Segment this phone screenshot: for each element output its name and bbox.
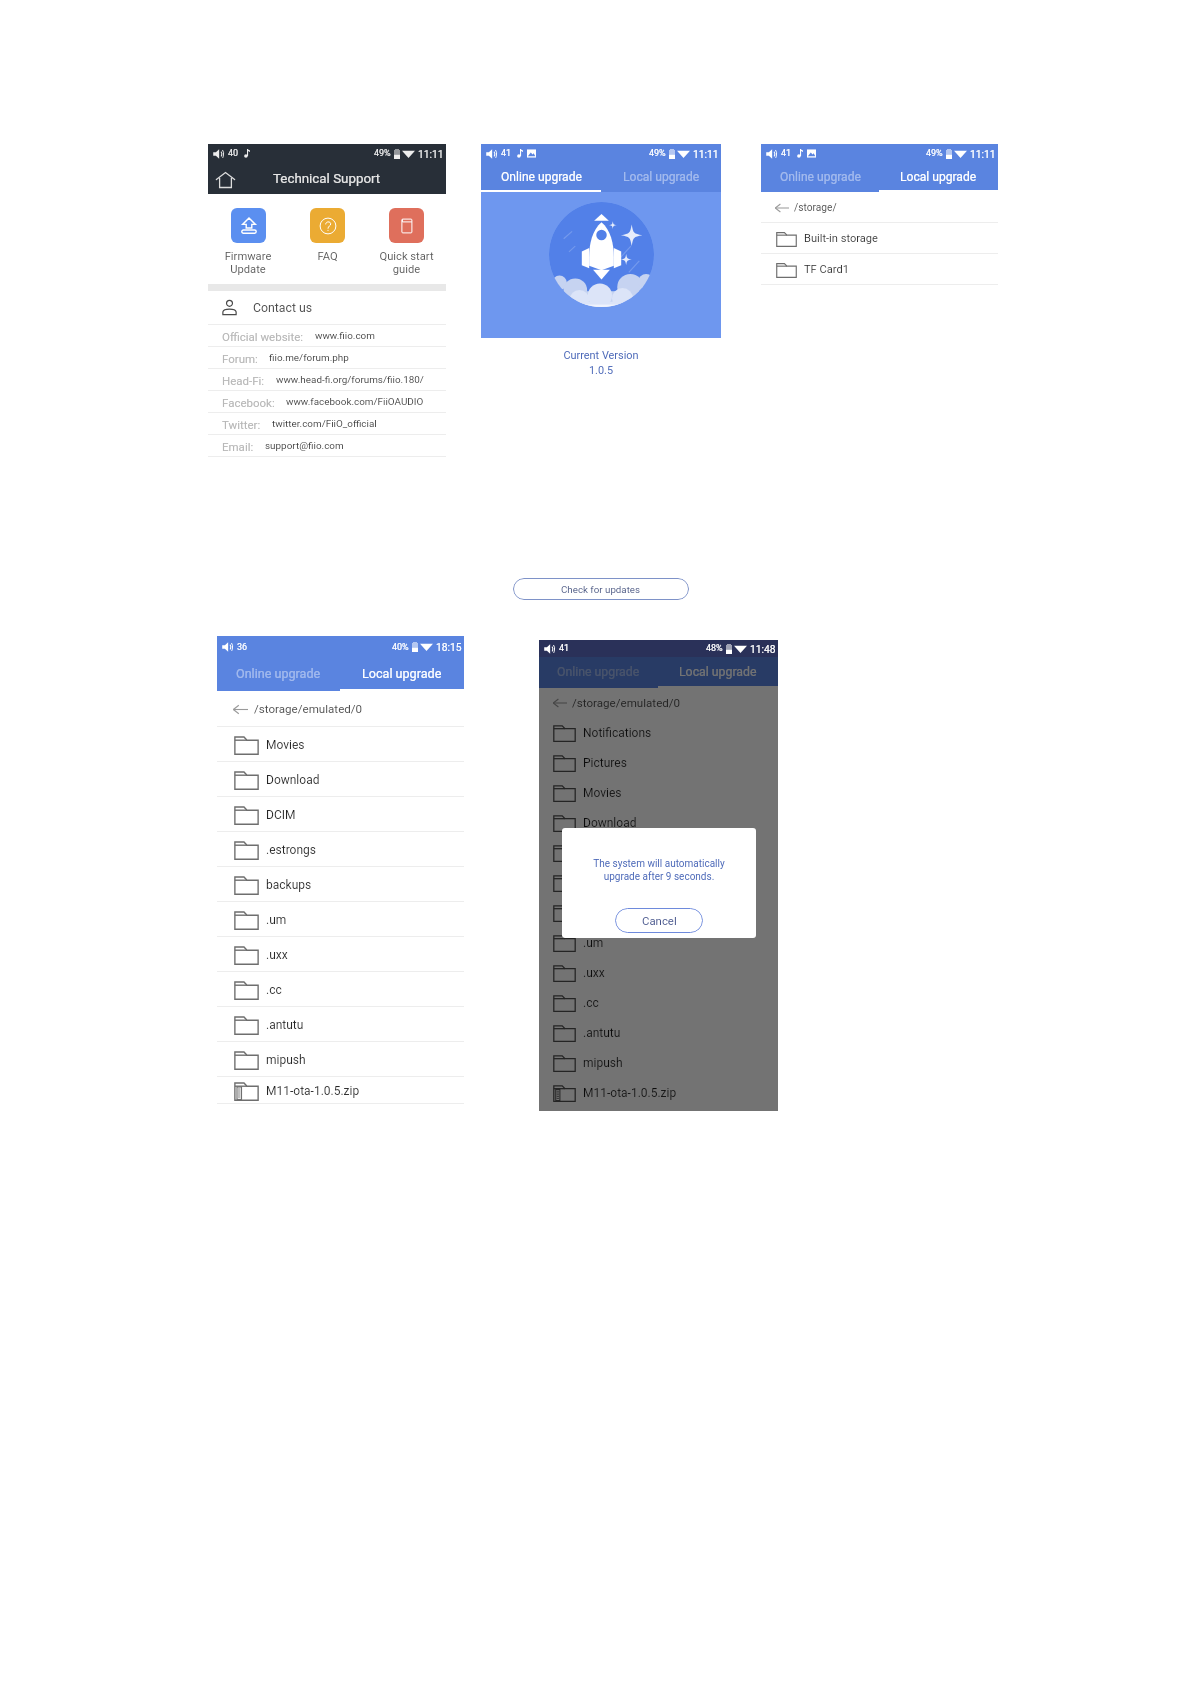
button[interactable]: M11-ota-1.0.5.zip <box>539 1078 778 1108</box>
button[interactable]: Official website: <box>208 325 446 347</box>
button[interactable]: .uxx <box>539 958 778 988</box>
staticText: www.head-fi.org/forums/fiio.180/ <box>276 374 424 386</box>
button[interactable]: Home <box>212 167 238 193</box>
button[interactable] <box>539 898 778 928</box>
staticText: .antutu <box>583 1026 621 1040</box>
staticText: .cc <box>583 996 599 1010</box>
staticText: support@fiio.com <box>265 440 344 452</box>
staticText: www.fiio.com <box>315 330 375 342</box>
staticText: Head-Fi: <box>222 374 265 387</box>
staticText: .uxx <box>266 948 288 962</box>
staticText: DCIM <box>266 808 296 822</box>
button[interactable]: Twitter: <box>208 413 446 435</box>
button[interactable]: mipush <box>539 1048 778 1078</box>
button[interactable]: Cancel <box>615 908 703 933</box>
button[interactable]: Movies <box>539 778 778 808</box>
button[interactable] <box>539 868 778 898</box>
staticText: Local upgrade <box>679 665 757 679</box>
button[interactable]: Facebook: <box>208 391 446 413</box>
button[interactable]: .estrongs <box>217 832 464 867</box>
button[interactable]: .cc <box>539 988 778 1018</box>
button[interactable]: Pictures <box>539 748 778 778</box>
button[interactable]: Forum: <box>208 347 446 369</box>
staticText: 40 <box>228 148 239 159</box>
button[interactable]: Local upgrade <box>340 658 464 691</box>
staticText: 41 <box>781 148 792 159</box>
staticText: M11-ota-1.0.5.zip <box>266 1084 360 1098</box>
staticText: M11-ota-1.0.5.zip <box>583 1086 677 1100</box>
staticText: /storage/emulated/0 <box>572 696 681 710</box>
button[interactable] <box>539 838 778 868</box>
button[interactable]: .antutu <box>217 1007 464 1042</box>
button[interactable]: Local upgrade <box>658 657 778 688</box>
staticText: 11:48 <box>750 643 776 655</box>
staticText: .estrongs <box>266 843 316 857</box>
button[interactable]: mipush <box>217 1042 464 1077</box>
staticText: Built-in storage <box>804 232 878 245</box>
staticText: www.facebook.com/FiiOAUDIO <box>286 396 424 408</box>
staticText: Download <box>583 816 637 830</box>
button[interactable]: Online upgrade <box>761 163 879 192</box>
button[interactable]: Back <box>232 691 464 727</box>
button[interactable]: Online upgrade <box>217 658 340 691</box>
button[interactable]: .antutu <box>539 1018 778 1048</box>
staticText: Local upgrade <box>623 170 700 184</box>
staticText: 48% <box>706 643 723 654</box>
button[interactable]: Local upgrade <box>601 163 721 192</box>
staticText: Movies <box>583 786 622 800</box>
staticText: /storage/ <box>794 202 837 214</box>
staticText: twitter.com/FiiO_official <box>272 418 377 430</box>
button[interactable]: Firmware Update <box>208 208 288 275</box>
button[interactable]: Online upgrade <box>481 163 601 192</box>
staticText: Cancel <box>642 914 677 927</box>
staticText: Firmware Update <box>208 250 288 275</box>
staticText: .antutu <box>266 1018 304 1032</box>
staticText: Technical Support <box>273 171 381 187</box>
button[interactable]: .uxx <box>217 937 464 972</box>
button[interactable]: Movies <box>217 727 464 762</box>
staticText: Current Version <box>481 349 721 362</box>
button[interactable]: Quick start guide <box>367 208 446 275</box>
button[interactable]: Download <box>539 808 778 838</box>
staticText: Facebook: <box>222 396 275 409</box>
staticText: Check for updates <box>561 584 641 595</box>
button[interactable]: Local upgrade <box>879 163 998 192</box>
staticText: 49% <box>926 148 943 159</box>
staticText: .um <box>583 936 604 950</box>
button[interactable]: M11-ota-1.0.5.zip <box>217 1077 464 1104</box>
staticText: Quick start guide <box>367 250 446 275</box>
staticText: mipush <box>583 1056 623 1070</box>
staticText: Twitter: <box>222 418 261 431</box>
button[interactable]: Check for updates <box>513 578 689 600</box>
button[interactable]: FAQ <box>288 208 367 263</box>
staticText: Local upgrade <box>900 170 977 184</box>
button[interactable]: TF Card1 <box>761 254 998 285</box>
button[interactable]: Contact us <box>221 291 446 324</box>
staticText: .cc <box>266 983 282 997</box>
staticText: 11:11 <box>418 148 444 160</box>
button[interactable]: backups <box>217 867 464 902</box>
button[interactable]: Head-Fi: <box>208 369 446 391</box>
staticText: Official website: <box>222 330 304 343</box>
button[interactable]: Back <box>774 192 998 223</box>
staticText: Notifications <box>583 726 652 740</box>
staticText: 11:11 <box>693 148 719 160</box>
button[interactable]: Notifications <box>539 718 778 748</box>
staticText: mipush <box>266 1053 306 1067</box>
button[interactable]: DCIM <box>217 797 464 832</box>
staticText: Online upgrade <box>501 170 582 184</box>
button[interactable]: .um <box>539 928 778 958</box>
staticText: Movies <box>266 738 305 752</box>
staticText: .uxx <box>583 966 605 980</box>
button[interactable]: Online upgrade <box>539 657 658 688</box>
button[interactable]: .um <box>217 902 464 937</box>
staticText: backups <box>266 878 312 892</box>
button[interactable]: Email: <box>208 435 446 457</box>
staticText: /storage/emulated/0 <box>254 702 363 716</box>
button[interactable]: Download <box>217 762 464 797</box>
staticText: Forum: <box>222 352 258 365</box>
staticText: Email: <box>222 440 254 453</box>
button[interactable]: .cc <box>217 972 464 1007</box>
button[interactable]: Built-in storage <box>761 223 998 254</box>
staticText: 49% <box>374 148 391 159</box>
